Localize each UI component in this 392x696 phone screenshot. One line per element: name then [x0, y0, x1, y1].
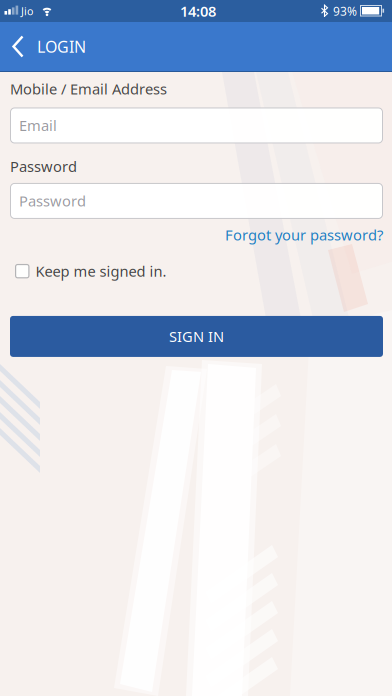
staticText: Password	[19, 191, 86, 210]
staticText: SIGN IN	[169, 327, 224, 346]
staticText: Password	[10, 156, 77, 176]
staticText: LOGIN	[37, 36, 86, 57]
staticText: Mobile / Email Address	[10, 79, 167, 98]
staticText: 14:08	[180, 1, 216, 21]
staticText: 93%	[333, 3, 357, 19]
button[interactable]: Password	[10, 183, 383, 219]
staticText: Keep me signed in.	[35, 261, 166, 281]
button[interactable]: LOGIN	[0, 22, 392, 71]
button[interactable]: Keep me signed in.	[10, 261, 166, 281]
button[interactable]: SIGN IN	[10, 316, 383, 357]
staticText: Email	[19, 115, 57, 135]
staticText: Forgot your password?	[225, 225, 383, 244]
staticText: Jio	[21, 4, 33, 18]
button[interactable]: Email	[10, 107, 383, 143]
button[interactable]: Forgot your password?	[225, 225, 383, 244]
